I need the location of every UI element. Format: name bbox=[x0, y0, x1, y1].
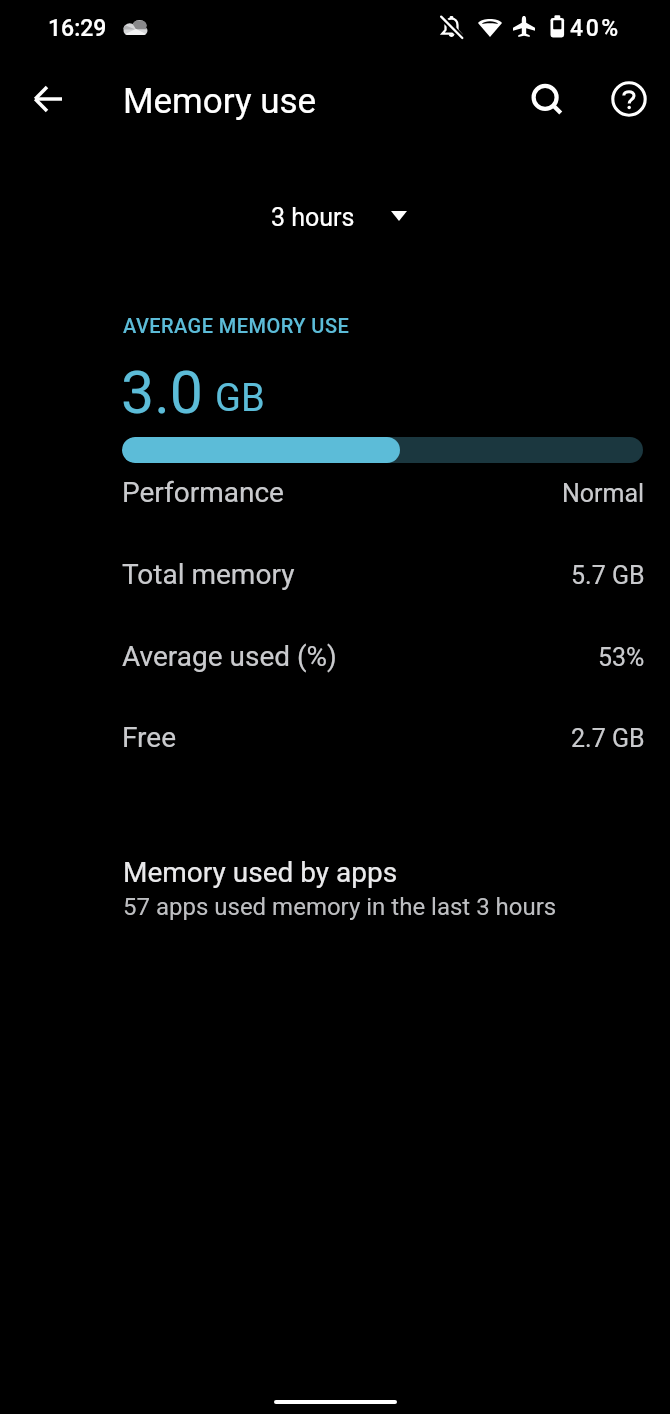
button[interactable]: Back bbox=[15, 66, 81, 132]
button[interactable]: Search bbox=[515, 68, 581, 134]
staticText: Memory use bbox=[123, 81, 317, 122]
staticText: Performance bbox=[122, 476, 284, 509]
staticText: GB bbox=[215, 376, 265, 421]
staticText: 57 apps used memory in the last 3 hours bbox=[123, 893, 557, 921]
staticText: 5.7 GB bbox=[571, 561, 645, 590]
staticText: Average used (%) bbox=[122, 640, 337, 673]
button[interactable]: Free bbox=[122, 701, 643, 783]
button[interactable]: Average used (%) bbox=[122, 620, 643, 702]
button[interactable]: Performance bbox=[122, 456, 643, 538]
staticText: 40% bbox=[570, 15, 621, 42]
staticText: Total memory bbox=[122, 558, 295, 591]
button[interactable]: 3 hours bbox=[261, 197, 417, 238]
staticText: 53% bbox=[598, 643, 645, 672]
button[interactable]: Help bbox=[596, 66, 662, 132]
staticText: 3 hours bbox=[271, 203, 355, 232]
button[interactable]: Memory used by apps bbox=[122, 832, 643, 932]
staticText: 16:29 bbox=[48, 15, 107, 42]
staticText: Memory used by apps bbox=[123, 856, 398, 889]
staticText: 2.7 GB bbox=[571, 724, 645, 753]
staticText: Free bbox=[122, 721, 177, 754]
staticText: AVERAGE MEMORY USE bbox=[123, 314, 350, 337]
staticText: 3.0 bbox=[121, 358, 203, 427]
button[interactable]: Total memory bbox=[122, 538, 643, 620]
staticText: Normal bbox=[562, 479, 645, 508]
